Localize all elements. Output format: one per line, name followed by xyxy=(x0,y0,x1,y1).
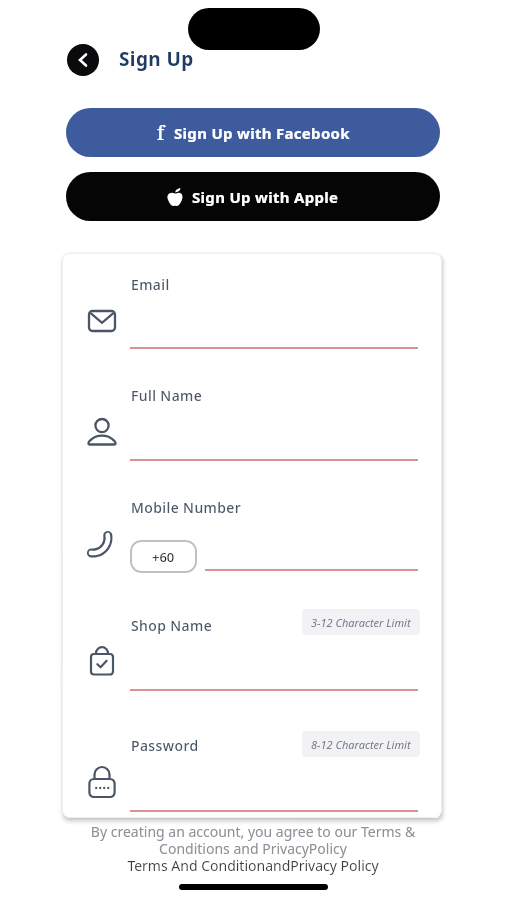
button[interactable]: +60 xyxy=(130,540,197,573)
staticText: 8-12 Character Limit xyxy=(311,737,411,752)
staticText: Full Name xyxy=(131,386,203,405)
staticText: By creating an account, you agree to our… xyxy=(0,822,506,841)
staticText: Shop Name xyxy=(131,616,213,635)
staticText: Mobile Number xyxy=(131,498,242,517)
staticText: Sign Up with Facebook xyxy=(174,123,350,143)
staticText: Email xyxy=(131,275,170,294)
staticText: f xyxy=(157,120,165,146)
staticText: Sign Up with Apple xyxy=(192,187,339,207)
button[interactable]: f xyxy=(66,108,440,157)
staticText: Sign Up xyxy=(119,46,194,72)
button[interactable]: Sign Up with Apple xyxy=(66,172,440,221)
button[interactable] xyxy=(67,44,99,76)
staticText: +60 xyxy=(152,548,175,566)
staticText: Conditions and PrivacyPolicy xyxy=(0,839,506,858)
staticText: Password xyxy=(131,736,199,755)
button[interactable]: Terms And ConditionandPrivacy Policy xyxy=(0,856,506,875)
staticText: 3-12 Character Limit xyxy=(311,615,411,630)
